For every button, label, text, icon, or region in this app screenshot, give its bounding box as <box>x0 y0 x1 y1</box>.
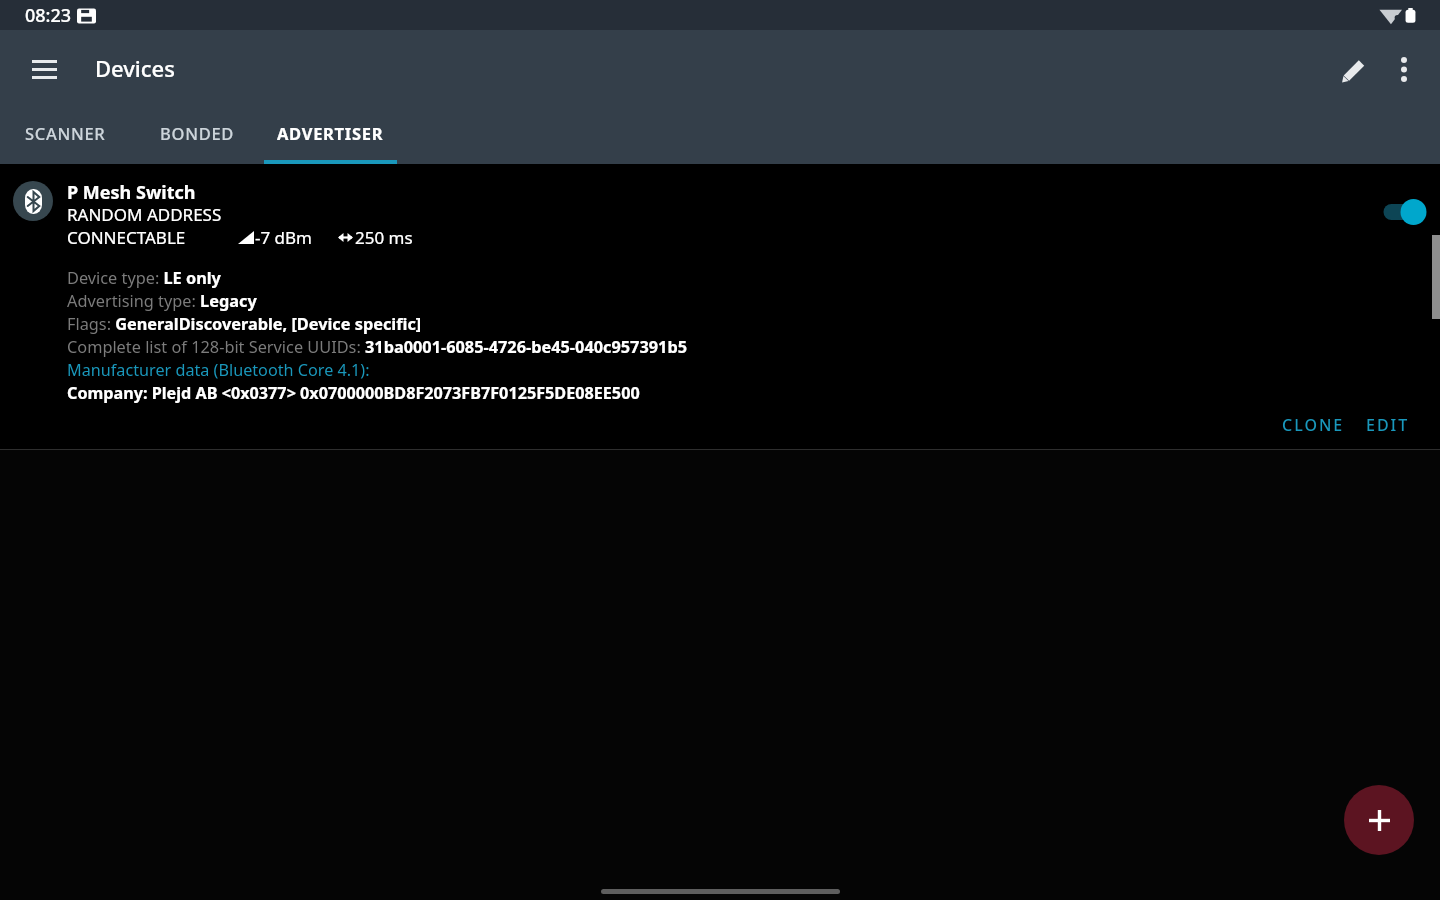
button[interactable]: More options <box>1380 45 1428 93</box>
staticText: Manufacturer data (Bluetooth Core 4.1): <box>67 359 370 381</box>
button[interactable]: CLONE <box>1272 405 1354 445</box>
button[interactable]: Advertising enabled <box>1378 197 1426 227</box>
staticText: P Mesh Switch <box>67 180 196 205</box>
staticText: Company: Plejd AB <0x0377> 0x0700000BD8F… <box>67 382 640 404</box>
button[interactable]: Open navigation menu <box>20 45 68 93</box>
staticText: 250 ms <box>355 226 413 249</box>
staticText: BONDED <box>160 122 235 144</box>
staticText: ADVERTISER <box>277 122 384 144</box>
button[interactable]: Add advertiser <box>1344 785 1414 855</box>
button[interactable]: EDIT <box>1358 405 1418 445</box>
staticText: SCANNER <box>25 122 106 144</box>
staticText: CLONE <box>1282 414 1345 436</box>
button[interactable]: SCANNER <box>0 108 131 164</box>
staticText: EDIT <box>1366 414 1410 436</box>
staticText: Advertising type: Legacy <box>67 290 257 312</box>
staticText: Complete list of 128-bit Service UUIDs: … <box>67 336 688 358</box>
staticText: CONNECTABLE <box>67 226 186 249</box>
staticText: Flags: GeneralDiscoverable, [Device spec… <box>67 313 422 335</box>
staticText: 08:23 <box>25 3 72 28</box>
button[interactable]: P Mesh Switch <box>0 164 1440 450</box>
button[interactable]: Edit <box>1330 45 1378 93</box>
staticText: -7 dBm <box>255 226 313 249</box>
staticText: RANDOM ADDRESS <box>67 203 222 226</box>
button[interactable]: BONDED <box>131 108 264 164</box>
button[interactable]: ADVERTISER <box>264 108 397 164</box>
staticText: Devices <box>95 53 175 83</box>
staticText: Device type: LE only <box>67 267 221 289</box>
